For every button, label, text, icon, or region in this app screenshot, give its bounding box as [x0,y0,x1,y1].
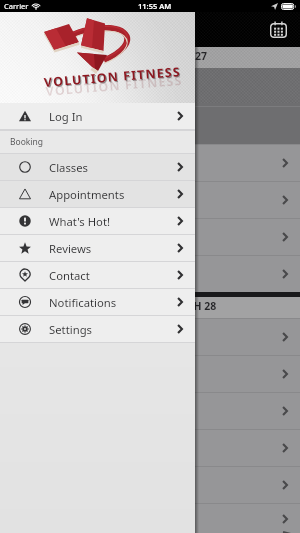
button[interactable]: Calendar [265,16,291,42]
staticText: VOLUTION FITNESS [44,64,183,92]
button[interactable] [0,145,300,181]
button[interactable] [0,256,300,292]
button[interactable]: Reviews [0,235,195,261]
button[interactable]: Appointments [0,181,195,207]
staticText: 11:55 AM [138,1,172,11]
button[interactable]: Classes [0,154,195,180]
button[interactable]: What's Hot! [0,208,195,234]
button[interactable] [0,219,300,255]
staticText: Appointments [49,187,125,202]
staticText: Reviews [49,241,92,256]
staticText: VOLUTION FITNESS [43,63,182,91]
button[interactable]: Log In [0,103,195,129]
button[interactable] [0,504,300,533]
button[interactable] [0,467,300,503]
staticText: Notifications [49,295,117,310]
button[interactable] [0,430,300,466]
staticText: What's Hot! [49,214,111,229]
staticText: Carrier [4,1,29,11]
staticText: Log In [49,109,83,124]
button[interactable]: Contact [0,262,195,288]
staticText: Classes [49,160,88,175]
staticText: Booking [10,136,44,148]
staticText: Settings [49,322,92,337]
staticText: Contact [49,268,90,283]
button[interactable]: Settings [0,316,195,342]
button[interactable] [0,356,300,392]
staticText: TUESDAY, MARCH 27 [102,49,208,63]
button[interactable] [0,393,300,429]
button[interactable] [0,182,300,218]
button[interactable]: Notifications [0,289,195,315]
staticText: VOLUTION FITNESS [45,72,184,100]
staticText: WEDNESDAY, MARCH 28 [93,299,217,313]
button[interactable] [0,319,300,355]
